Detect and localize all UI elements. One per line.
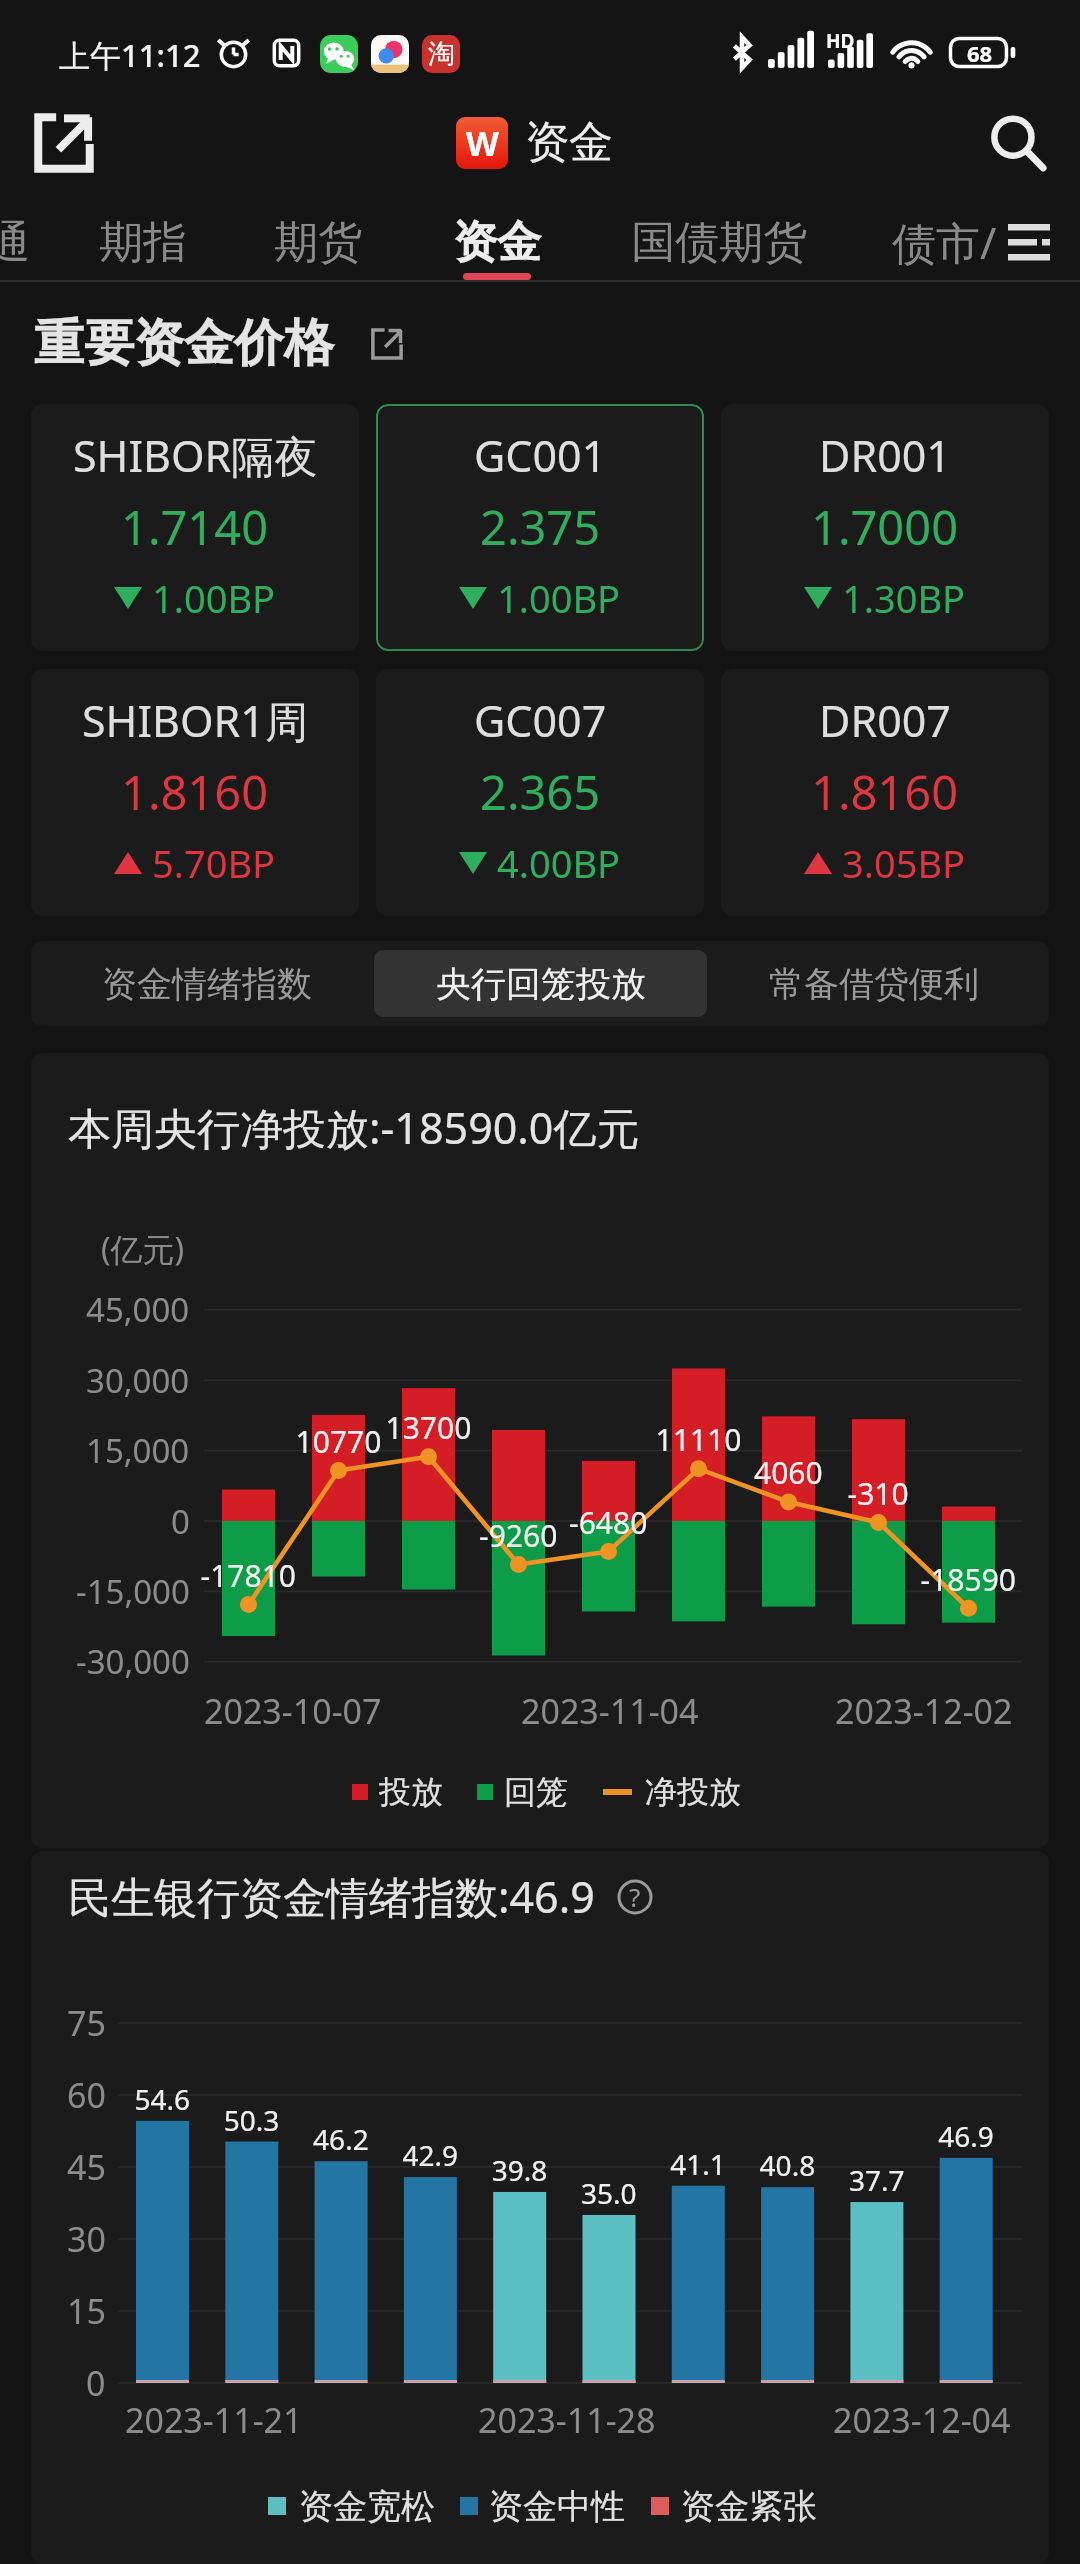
staticText: 央行回笼投放: [436, 962, 646, 1006]
staticText: 5.70BP: [152, 837, 276, 889]
staticText: 4.00BP: [497, 837, 621, 889]
staticText: 通: [0, 215, 30, 270]
button[interactable]: Search: [988, 114, 1046, 172]
button[interactable]: Share: [36, 115, 92, 171]
button[interactable]: DR007: [721, 669, 1049, 916]
staticText: 上午11:12: [59, 34, 201, 76]
staticText: 资金情绪指数: [102, 962, 312, 1006]
staticText: DR001: [819, 426, 951, 485]
staticText: 1.8160: [121, 760, 269, 824]
staticText: ?: [629, 1879, 641, 1914]
staticText: 期货: [274, 215, 362, 270]
staticText: 重要资金价格: [34, 312, 334, 375]
staticText: SHIBOR1周: [82, 691, 308, 750]
button[interactable]: SHIBOR隔夜: [31, 404, 359, 651]
staticText: DR007: [819, 691, 951, 750]
staticText: 1.00BP: [152, 572, 276, 624]
staticText: 3.05BP: [842, 837, 966, 889]
staticText: 债市/: [892, 212, 997, 272]
button[interactable]: 常备借贷便利: [707, 950, 1040, 1017]
button[interactable]: Help: [615, 1877, 655, 1917]
staticText: 本周央行净投放:-18590.0亿元: [68, 1098, 640, 1157]
button[interactable]: 资金: [438, 190, 556, 282]
staticText: 淘: [428, 37, 455, 71]
button[interactable]: 央行回笼投放: [374, 950, 707, 1017]
staticText: GC001: [474, 426, 607, 485]
button[interactable]: 期指: [84, 190, 202, 282]
button[interactable]: Open detail: [372, 329, 402, 359]
button[interactable]: 国债期货: [614, 190, 824, 282]
button[interactable]: DR001: [721, 404, 1049, 651]
staticText: 2.365: [480, 760, 601, 824]
staticText: 民生银行资金情绪指数:46.9: [68, 1867, 595, 1926]
staticText: 常备借贷便利: [769, 962, 979, 1006]
staticText: 1.00BP: [497, 572, 621, 624]
button[interactable]: SHIBOR1周: [31, 669, 359, 916]
staticText: 国债期货: [631, 215, 807, 270]
staticText: 1.7140: [121, 495, 269, 559]
button[interactable]: 期货: [259, 190, 377, 282]
button[interactable]: 资金情绪指数: [40, 950, 374, 1017]
staticText: 2.375: [480, 495, 601, 559]
staticText: GC007: [474, 691, 607, 750]
staticText: 1.30BP: [842, 572, 966, 624]
staticText: 期指: [99, 215, 187, 270]
button[interactable]: 通: [0, 190, 44, 282]
button[interactable]: More tabs: [1003, 218, 1055, 266]
staticText: HD: [826, 28, 855, 54]
staticText: W: [466, 120, 499, 166]
staticText: 资金: [525, 115, 613, 170]
staticText: SHIBOR隔夜: [73, 426, 318, 485]
button[interactable]: GC001: [376, 404, 704, 651]
staticText: 1.8160: [811, 760, 959, 824]
button[interactable]: 债市/: [862, 190, 1026, 282]
button[interactable]: GC007: [376, 669, 704, 916]
staticText: 资金: [453, 215, 541, 270]
staticText: 68: [967, 38, 993, 68]
staticText: 1.7000: [811, 495, 959, 559]
